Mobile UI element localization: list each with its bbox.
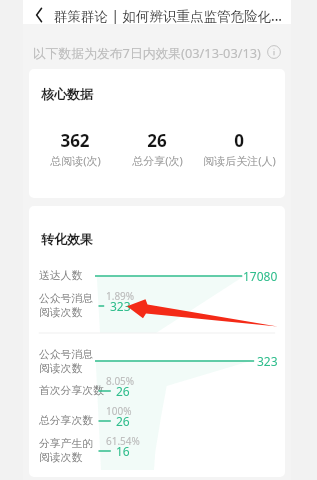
staticText: 阅读次数 <box>39 451 83 465</box>
staticText: 送达人数 <box>39 269 83 283</box>
staticText: 公众号消息 <box>39 292 93 306</box>
staticText: 61.54% <box>106 434 140 448</box>
staticText: 以下数据为发布7日内效果(03/13-03/13) <box>33 44 261 61</box>
button[interactable]: 送达人数 <box>29 263 285 289</box>
button[interactable]: 首次分享次数 <box>29 376 285 406</box>
staticText: 阅读后关注(人) <box>203 153 276 168</box>
staticText: 总分享(次) <box>132 153 183 168</box>
staticText: 核心数据 <box>41 86 93 102</box>
staticText: 总分享次数 <box>39 414 93 428</box>
button[interactable]: 公众号消息 阅读次数 <box>29 348 285 374</box>
staticText: 323 <box>257 353 278 369</box>
staticText: 362 <box>60 129 90 152</box>
staticText: 首次分享次数 <box>39 384 104 398</box>
button[interactable]: 总分享次数 <box>29 406 285 436</box>
staticText: 100% <box>106 404 132 418</box>
staticText: 323 <box>110 298 131 314</box>
button[interactable]: 公众号消息 <box>29 291 285 321</box>
staticText: 分享产生的 <box>39 437 93 451</box>
staticText: 16 <box>116 443 130 459</box>
button[interactable]: Info <box>267 45 281 59</box>
staticText: 总阅读(次) <box>50 153 101 168</box>
staticText: 公众号消息 阅读次数 <box>39 348 93 374</box>
staticText: 26 <box>116 383 130 399</box>
staticText: 0 <box>234 129 244 152</box>
staticText: 转化效果 <box>41 231 93 247</box>
staticText: 群策群论 | 如何辨识重点监管危险化... <box>54 7 282 25</box>
button[interactable]: 核心数据 <box>29 69 285 198</box>
staticText: 26 <box>147 129 167 152</box>
staticText: 1.89% <box>106 289 135 303</box>
button[interactable]: Back <box>27 3 51 27</box>
staticText: 26 <box>116 413 130 429</box>
staticText: 阅读次数 <box>39 306 83 320</box>
staticText: 8.05% <box>106 374 135 388</box>
button[interactable]: 分享产生的 <box>29 436 285 466</box>
staticText: 17080 <box>243 268 278 284</box>
